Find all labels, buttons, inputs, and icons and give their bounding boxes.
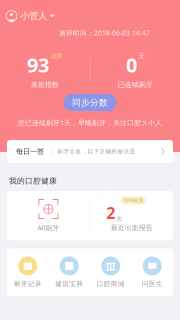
button[interactable]: 每日一答 [7, 140, 173, 163]
button[interactable]: 同步分数 [63, 94, 116, 111]
staticText: 您已连续刷牙1天，早晚刷牙，关注口腔ス小人 [18, 118, 162, 127]
staticText: 美齿指数 [31, 80, 59, 89]
staticText: 我的口腔健康 [9, 176, 57, 186]
staticText: 2 [106, 202, 115, 224]
button[interactable]: 刷牙记录 [7, 256, 48, 288]
staticText: 口腔商城 [97, 279, 125, 288]
staticText: 同步分数 [72, 97, 108, 108]
staticText: 0 [126, 51, 137, 78]
staticText: 问医生 [142, 279, 163, 288]
staticText: 93 [27, 51, 49, 78]
staticText: 已连续刷牙 [118, 80, 153, 89]
staticText: 每日一答 [16, 147, 44, 156]
staticText: AR刷牙 [37, 223, 59, 232]
button[interactable]: 口腔商城 [90, 256, 131, 288]
staticText: 刷牙出血，以下正确的做法是 [58, 148, 136, 155]
staticText: 优秀 [51, 52, 63, 60]
staticText: 次 [116, 215, 122, 223]
staticText: 测评时间：2018-06-03 14:47 [59, 28, 150, 38]
staticText: 健齿宝典 [55, 279, 83, 288]
staticText: 刷牙记录 [14, 279, 42, 288]
staticText: 等待检测 [123, 197, 143, 204]
staticText: 天 [138, 52, 144, 60]
button[interactable]: 2 [90, 199, 173, 232]
button[interactable]: 健齿宝典 [48, 256, 90, 288]
staticText: 最近出血报告 [111, 223, 153, 232]
button[interactable]: 问医生 [131, 256, 173, 288]
staticText: 小管人 [20, 10, 47, 22]
button[interactable]: AR刷牙 [7, 199, 90, 232]
button[interactable]: Profile [0, 0, 62, 22]
